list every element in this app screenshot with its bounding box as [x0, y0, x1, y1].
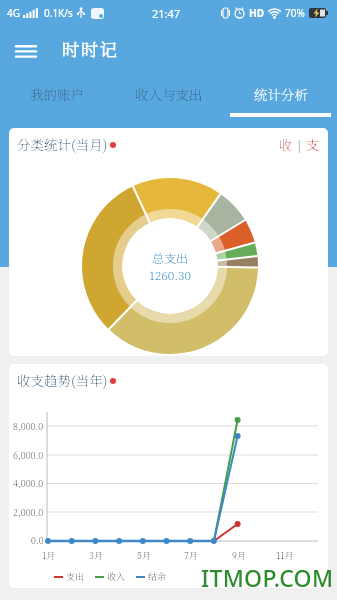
- staticText: 4G: [7, 6, 20, 20]
- staticText: 1月: [42, 549, 56, 562]
- staticText: 收: [279, 135, 293, 154]
- button[interactable]: [8, 34, 44, 70]
- staticText: 3月: [89, 549, 103, 562]
- staticText: 收支趋势(当年): [17, 370, 108, 389]
- staticText: 分类统计(当月): [17, 134, 108, 153]
- staticText: 9月: [232, 549, 246, 562]
- staticText: HD: [249, 6, 264, 20]
- staticText: ITMOP.COM: [201, 562, 334, 593]
- staticText: 4,000.0: [13, 477, 44, 490]
- staticText: 5月: [137, 549, 151, 562]
- staticText: 我的账户: [30, 84, 84, 103]
- staticText: 1260.30: [149, 266, 192, 282]
- staticText: 6,000.0: [13, 449, 44, 462]
- staticText: 0.0: [31, 534, 44, 547]
- staticText: 时时记: [62, 36, 119, 60]
- staticText: 8,000.0: [13, 420, 44, 433]
- staticText: 统计分析: [254, 84, 308, 103]
- staticText: 收入与支出: [135, 84, 203, 103]
- button[interactable]: 收: [279, 135, 320, 154]
- staticText: 支: [306, 135, 320, 154]
- staticText: 收入: [107, 570, 126, 583]
- staticText: 结余: [148, 570, 167, 583]
- staticText: 总支出: [152, 249, 189, 265]
- staticText: 70%: [285, 6, 305, 20]
- staticText: 7月: [184, 549, 198, 562]
- staticText: 支出: [66, 570, 85, 583]
- button[interactable]: 我的账户: [0, 70, 113, 117]
- staticText: 2,000.0: [13, 506, 44, 519]
- button[interactable]: 收入与支出: [113, 70, 225, 117]
- staticText: 21:47: [152, 6, 181, 21]
- staticText: 11月: [276, 549, 294, 562]
- staticText: |: [293, 137, 306, 153]
- button[interactable]: 统计分析: [225, 70, 337, 117]
- staticText: 0.1K/s: [44, 6, 73, 20]
